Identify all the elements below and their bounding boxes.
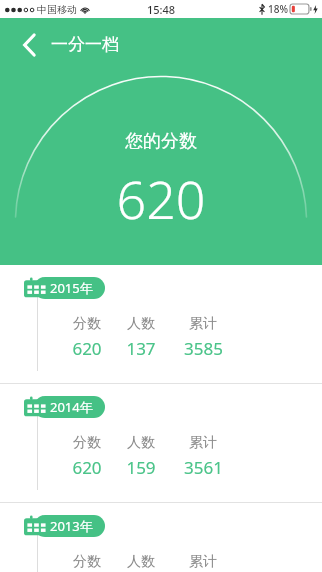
staticText: 3561	[184, 456, 223, 479]
staticText: 2014年	[50, 398, 93, 416]
button[interactable]: 2013年	[0, 503, 322, 572]
staticText: 一分一档	[51, 34, 119, 55]
staticText: 620	[116, 163, 206, 234]
staticText: 中国移动	[37, 3, 77, 16]
staticText: 分数	[73, 434, 101, 452]
button[interactable]: Back	[12, 28, 46, 62]
staticText: 人数	[127, 553, 155, 571]
staticText: 累计	[189, 315, 217, 333]
button[interactable]: 2014年	[0, 384, 322, 502]
staticText: 人数	[127, 434, 155, 452]
staticText: 2013年	[50, 517, 93, 535]
staticText: 您的分数	[125, 130, 197, 153]
staticText: 累计	[189, 553, 217, 571]
staticText: 累计	[189, 434, 217, 452]
staticText: 159	[126, 456, 156, 479]
staticText: 分数	[73, 315, 101, 333]
staticText: 人数	[127, 315, 155, 333]
staticText: 620	[72, 337, 102, 360]
staticText: 分数	[73, 553, 101, 571]
staticText: 3585	[184, 337, 223, 360]
staticText: 137	[126, 337, 156, 360]
staticText: 18%	[268, 2, 288, 16]
staticText: 620	[72, 456, 102, 479]
staticText: 15:48	[147, 2, 176, 17]
staticText: 2015年	[50, 279, 93, 297]
button[interactable]: 2015年	[0, 265, 322, 383]
